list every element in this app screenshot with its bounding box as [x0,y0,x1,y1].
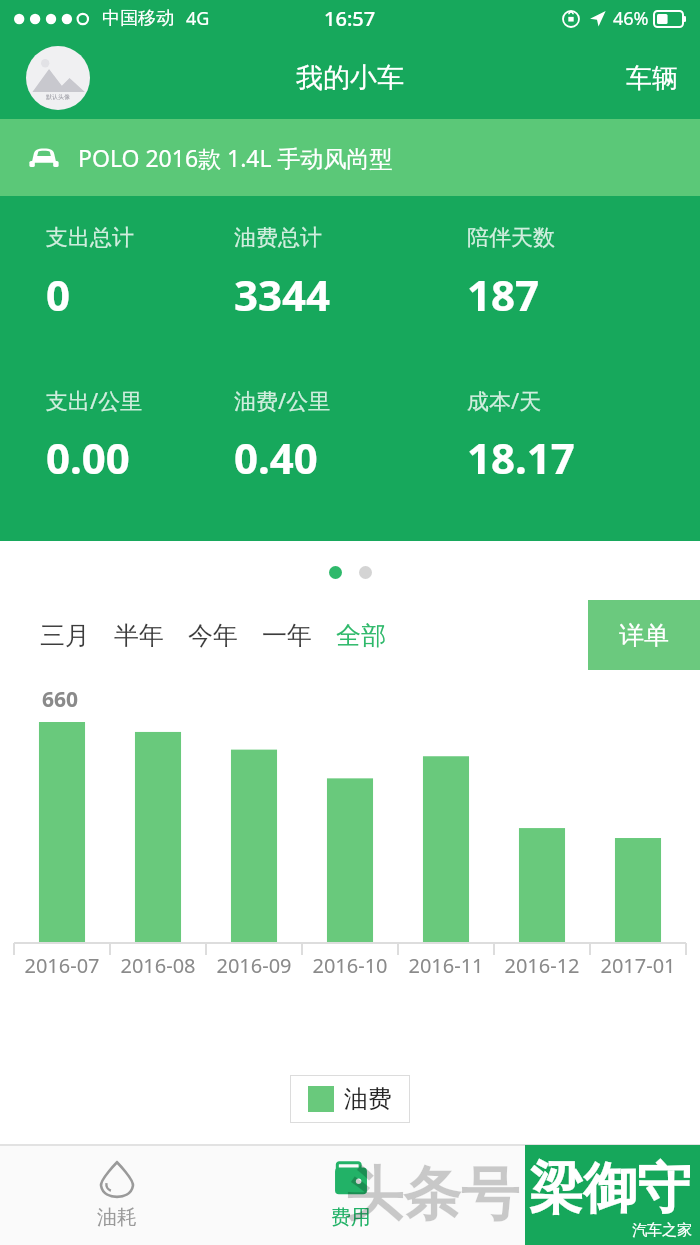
button[interactable]: 半年 [102,610,176,661]
staticText: 汽车之家 [632,1221,692,1240]
staticText: 一年 [262,620,312,651]
staticText: 梁御守 [529,1155,691,1223]
staticText: 2016-09 [216,952,292,979]
staticText: 2016-10 [312,952,388,979]
staticText: 46% [613,6,649,31]
staticText: 0 [46,266,71,323]
staticText: 支出总计 [46,224,134,252]
button[interactable]: 油费 [290,1075,410,1123]
staticText: 详单 [619,620,669,651]
button[interactable]: 车辆 [604,48,700,109]
button[interactable]: 三月 [28,610,102,661]
staticText: 2016-11 [408,952,484,979]
button[interactable]: Page 2 [359,566,372,579]
staticText: 油费/公里 [234,385,331,415]
staticText: 今年 [188,620,238,651]
staticText: 2016-07 [24,952,100,979]
staticText: 0.40 [234,429,318,486]
staticText: 三月 [40,620,90,651]
staticText: 头条号 / [345,1152,559,1231]
button[interactable]: 一年 [250,610,324,661]
staticText: 半年 [114,620,164,651]
staticText: 2016-08 [120,952,196,979]
staticText: 660 [42,685,79,714]
staticText: 发现 [564,1205,604,1230]
staticText: 全部 [336,620,386,651]
staticText: POLO 2016款 1.4L 手动风尚型 [78,142,393,173]
staticText: 3344 [234,266,331,323]
button[interactable]: POLO 2016款 1.4L 手动风尚型 [0,119,700,196]
staticText: 陪伴天数 [467,224,555,252]
staticText: 费用 [331,1205,371,1230]
staticText: 0.00 [46,429,130,486]
staticText: 我的小车 [296,61,404,95]
staticText: 16:57 [324,5,376,32]
staticText: 油费 [344,1084,392,1114]
staticText: 成本/天 [467,385,542,415]
button[interactable]: 发现 [467,1145,700,1245]
staticText: 默认头像 [46,93,70,101]
button[interactable]: Page 1 [329,566,342,579]
button[interactable]: 油耗 [0,1145,234,1245]
staticText: 4G [186,6,210,31]
button[interactable]: 今年 [176,610,250,661]
staticText: 187 [467,266,540,323]
button[interactable]: 详单 [588,600,700,670]
staticText: 油费总计 [234,224,322,252]
staticText: 18.17 [467,429,575,486]
button[interactable]: Profile [26,46,90,110]
staticText: 中国移动 [102,7,174,30]
staticText: 车辆 [626,62,678,95]
button[interactable]: 费用 [234,1145,467,1245]
staticText: 支出/公里 [46,385,143,415]
staticText: 油耗 [97,1205,137,1230]
staticText: 2016-12 [504,952,580,979]
staticText: 2017-01 [600,952,676,979]
button[interactable]: 全部 [324,610,398,661]
